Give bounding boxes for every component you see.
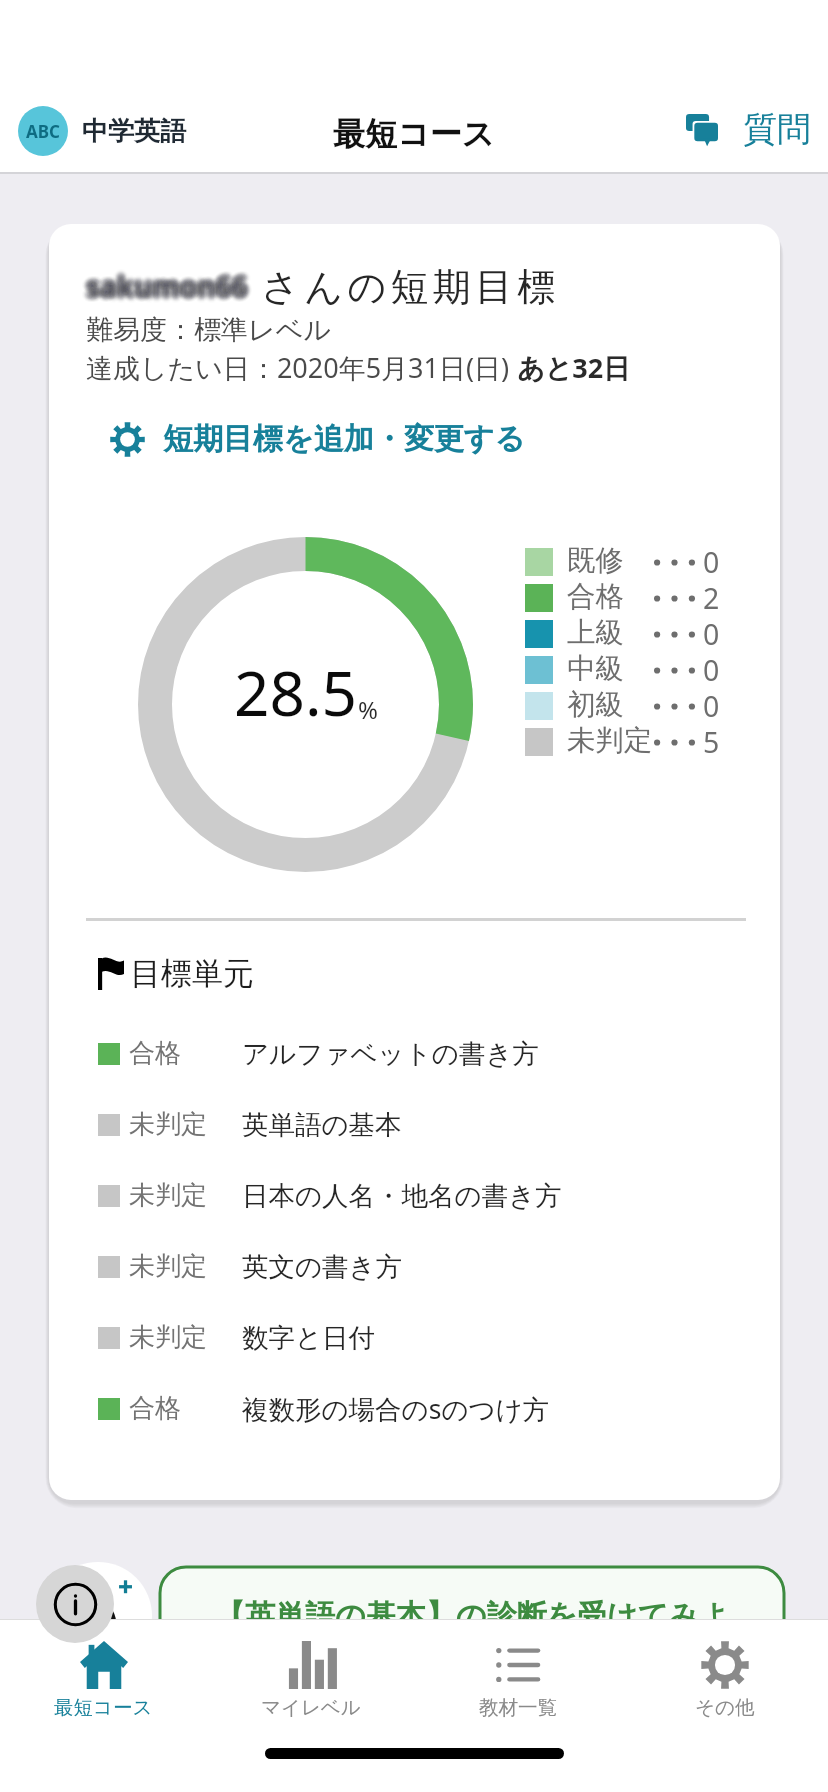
staticText: sakumon66 [91,267,253,305]
button[interactable]: 合格 [49,1373,780,1444]
staticText: sakumon66 [90,267,252,305]
staticText: sakumon66 [92,265,254,303]
staticText: sakumon66 [85,273,247,311]
staticText: sakumon66 [88,268,250,306]
staticText: sakumon66 [82,266,244,304]
staticText: sakumon66 [84,268,246,306]
staticText: sakumon66 [90,266,252,304]
staticText: アルファベットの書き方 [242,1037,540,1070]
staticText: sakumon66 [85,265,247,303]
staticText: 2 [703,579,720,615]
staticText: 最短コース [54,1695,153,1720]
staticText: 最短コース [333,114,495,154]
staticText: sakumon66 [82,270,244,308]
staticText: sakumon66 [86,266,248,304]
staticText: sakumon66 [87,262,249,300]
button[interactable]: 教材一覧 [414,1620,621,1728]
button[interactable]: 合格 [49,1018,780,1089]
staticText: sakumon66 [84,261,246,299]
staticText: sakumon66 [85,266,247,304]
button[interactable]: 未判定 [49,1231,780,1302]
staticText: 英文の書き方 [242,1250,403,1283]
staticText: 難易度：標準レベル [86,313,331,347]
staticText: 中学英語 [82,115,186,148]
staticText: sakumon66 [82,269,244,307]
staticText: sakumon66 [82,268,244,306]
staticText: 0 [703,687,720,723]
staticText: マイレベル [261,1695,361,1720]
staticText: sakumon66 [91,264,253,302]
staticText: sakumon66 [85,262,247,300]
staticText: sakumon66 [80,268,242,306]
button[interactable]: 【英単語の基本】の診断を受けてみよ [160,1567,784,1667]
staticText: sakumon66 [80,265,242,303]
button[interactable]: マイレベル [207,1620,414,1728]
staticText: sakumon66 [89,264,251,302]
button[interactable]: 未判定 [49,1089,780,1160]
staticText: sakumon66 [86,263,248,301]
staticText: sakumon66 [91,265,253,303]
button[interactable]: ABC [18,106,186,156]
staticText: sakumon66 [83,262,245,300]
staticText: sakumon66 [88,272,250,310]
staticText: sakumon66 [86,272,248,310]
staticText: sakumon66 [87,271,249,309]
staticText: 未判定 [129,1250,207,1283]
staticText: 質問 [743,108,811,151]
staticText: sakumon66 [88,264,250,302]
staticText: sakumon66 [84,273,246,311]
staticText: sakumon66 [83,263,245,301]
staticText: sakumon66 [87,270,249,308]
staticText: sakumon66 [82,267,244,305]
button[interactable]: Info [36,1565,114,1643]
staticText: sakumon66 [87,272,249,310]
staticText: sakumon66 [87,273,249,311]
staticText: sakumon66 [83,265,245,303]
staticText: その他 [695,1695,755,1720]
button[interactable]: 質問 [678,108,811,151]
staticText: sakumon66 [87,268,249,306]
staticText: sakumon66 [90,271,252,309]
staticText: sakumon66 [88,266,250,304]
staticText: sakumon66 [89,272,251,310]
staticText: 短期目標を追加・変更する [163,420,526,458]
staticText: sakumon66 [82,271,244,309]
button[interactable]: その他 [621,1620,828,1728]
staticText: sakumon66 [82,265,244,303]
button[interactable]: Add friend [44,1562,152,1670]
button[interactable]: 未判定 [49,1302,780,1373]
staticText: sakumon66 [88,267,250,305]
staticText: 合格 [567,579,624,615]
staticText: 0 [703,651,720,687]
staticText: sakumon66 [88,265,250,303]
staticText: sakumon66 [84,266,246,304]
button[interactable]: 最短コース [0,1620,207,1728]
staticText: sakumon66 [85,263,247,301]
staticText: sakumon66 [86,271,248,309]
button[interactable]: 短期目標を追加・変更する [110,420,526,458]
staticText: sakumon66 [85,271,247,309]
staticText: sakumon66 [83,269,245,307]
staticText: sakumon66 [88,262,250,300]
staticText: sakumon66 [82,264,244,302]
staticText: sakumon66 [85,270,247,308]
staticText: sakumon66 [88,269,250,307]
staticText: sakumon66 [85,268,247,306]
staticText: sakumon66 [83,267,245,305]
staticText: sakumon66 [87,264,249,302]
staticText: sakumon66 [86,264,248,302]
staticText: sakumon66 [83,270,245,308]
staticText: 複数形の場合のsのつけ方 [242,1391,550,1427]
staticText: sakumon66 [85,267,247,305]
staticText: sakumon66 [89,268,251,306]
staticText: sakumon66 [90,268,252,306]
button[interactable]: 未判定 [49,1160,780,1231]
staticText: sakumon66 [86,261,248,299]
staticText: 合格 [129,1392,181,1425]
staticText: sakumon66 [80,269,242,307]
staticText: sakumon66 [81,266,243,304]
staticText: sakumon66 [81,270,243,308]
staticText: sakumon66 [89,269,251,307]
staticText: sakumon66 [81,265,243,303]
staticText: sakumon66 [88,273,250,311]
